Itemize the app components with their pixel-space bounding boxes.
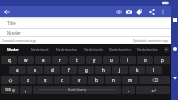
staticText: s [34, 67, 37, 73]
button[interactable]: r [52, 56, 68, 64]
staticText: q [8, 57, 11, 63]
button[interactable]: n [105, 76, 121, 84]
staticText: x [44, 77, 47, 83]
button[interactable]: Shift [1, 76, 19, 84]
button[interactable]: i [120, 56, 136, 64]
staticText: c [61, 77, 64, 83]
staticText: w [24, 57, 28, 63]
staticText: o [144, 57, 147, 63]
staticText: n [112, 77, 115, 83]
staticText: a [16, 67, 19, 73]
button[interactable]: s [27, 66, 43, 74]
staticText: Nederland [31, 47, 49, 52]
button[interactable]: Nieder [0, 29, 171, 37]
staticText: Title [7, 20, 16, 26]
staticText: Nederlandse [56, 47, 78, 52]
staticText: d [51, 67, 54, 73]
button[interactable]: Home [171, 45, 178, 52]
staticText: Dutch Qwerty [68, 88, 87, 92]
staticText: . [128, 87, 130, 93]
button[interactable]: e [35, 56, 51, 64]
staticText: j [119, 67, 121, 73]
button[interactable]: Nederlands [80, 44, 107, 55]
button[interactable]: More options [158, 7, 167, 17]
button[interactable]: Nederlandse [53, 44, 80, 55]
staticText: g [85, 67, 88, 73]
staticText: l [153, 67, 155, 73]
button[interactable]: Space [33, 86, 121, 94]
staticText: Nederlands [84, 47, 104, 52]
button[interactable]: c [54, 76, 70, 84]
button[interactable]: d [44, 66, 60, 74]
staticText: h [102, 67, 105, 73]
button[interactable]: Navigate up [2, 7, 12, 17]
button[interactable]: Title [0, 17, 171, 29]
staticText: y [93, 57, 96, 63]
staticText: k [136, 67, 139, 73]
staticText: p [161, 57, 164, 63]
button[interactable]: Nederland [26, 44, 53, 55]
staticText: Updated: moments ago [133, 39, 169, 43]
button[interactable]: y [86, 56, 102, 64]
button[interactable]: . [122, 86, 135, 94]
staticText: z [27, 77, 30, 83]
button[interactable]: o [137, 56, 153, 64]
button[interactable]: More suggestions [161, 44, 171, 55]
staticText: u [110, 57, 113, 63]
staticText: i [127, 57, 129, 63]
staticText: Nederlanders [109, 47, 132, 52]
button[interactable]: Backspace [139, 76, 170, 84]
button[interactable]: z [20, 76, 36, 84]
button[interactable]: q [1, 56, 17, 64]
button[interactable]: Share [147, 7, 157, 17]
button[interactable]: Nederlandse [134, 44, 161, 55]
staticText: b [95, 77, 98, 83]
button[interactable]: Nederlanders [107, 44, 134, 55]
button[interactable]: w [18, 56, 34, 64]
staticText: v [78, 77, 81, 83]
staticText: Created: moments ago [2, 39, 37, 43]
button[interactable]: j [112, 66, 128, 74]
button[interactable]: x [37, 76, 53, 84]
button[interactable]: Attach photo [124, 7, 134, 17]
staticText: r [59, 57, 61, 63]
button[interactable]: u [103, 56, 119, 64]
button[interactable]: Labels [134, 7, 144, 17]
button[interactable]: b [88, 76, 104, 84]
button[interactable]: t [69, 56, 85, 64]
button[interactable]: Enter [136, 86, 170, 94]
button[interactable]: l [146, 66, 162, 74]
button[interactable]: a [9, 66, 26, 74]
button[interactable]: f [61, 66, 77, 74]
button[interactable]: Recent apps [171, 16, 178, 23]
staticText: 123 [5, 88, 11, 92]
button[interactable]: Symbols and language [1, 86, 19, 94]
staticText: m [128, 77, 133, 83]
staticText: , [25, 87, 27, 93]
staticText: t [76, 57, 78, 63]
button[interactable]: v [71, 76, 87, 84]
button[interactable]: Preview [114, 7, 124, 17]
staticText: Nieder [7, 30, 21, 36]
button[interactable]: k [129, 66, 145, 74]
button[interactable]: h [95, 66, 111, 74]
button[interactable]: g [78, 66, 94, 74]
staticText: e [42, 57, 45, 63]
button[interactable]: m [122, 76, 138, 84]
button[interactable]: p [154, 56, 170, 64]
staticText: Nederlandse [137, 47, 159, 52]
button[interactable]: Nieder [0, 44, 26, 55]
staticText: Nieder [7, 47, 19, 52]
staticText: f [68, 67, 70, 73]
button[interactable]: , [20, 86, 32, 94]
button[interactable]: Back [171, 74, 178, 81]
